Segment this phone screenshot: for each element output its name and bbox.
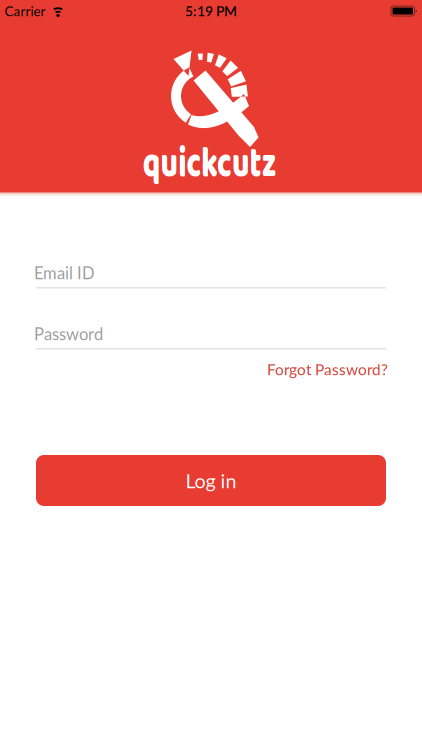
staticText: Forgot Password? <box>267 360 388 378</box>
staticText: quickcutz <box>111 128 307 199</box>
staticText: Email ID <box>34 263 95 283</box>
staticText: Log in <box>185 469 236 492</box>
button[interactable]: Forgot Password? <box>267 360 388 378</box>
staticText: 5:19 PM <box>185 3 237 19</box>
staticText: Carrier <box>4 3 45 19</box>
button[interactable]: Log in <box>36 455 386 506</box>
staticText: Password <box>34 324 103 344</box>
